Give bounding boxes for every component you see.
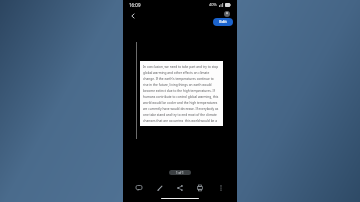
- button[interactable]: Edit: [153, 181, 167, 195]
- staticText: 16:09: [129, 2, 141, 8]
- button[interactable]: Back: [127, 10, 139, 22]
- button[interactable]: More options: [214, 181, 228, 195]
- staticText: 1 of 1: [176, 171, 184, 175]
- button[interactable]: Print: [193, 181, 207, 195]
- staticText: Edit: [219, 19, 227, 25]
- button[interactable]: Share: [173, 181, 187, 195]
- button[interactable]: Edit: [213, 18, 233, 26]
- button[interactable]: In conclusion, we need to take part and …: [140, 61, 223, 126]
- button[interactable]: Comment: [132, 181, 146, 195]
- button[interactable]: Account: [222, 9, 231, 18]
- staticText: 40%: [209, 2, 217, 7]
- staticText: In conclusion, we need to take part and …: [143, 65, 220, 122]
